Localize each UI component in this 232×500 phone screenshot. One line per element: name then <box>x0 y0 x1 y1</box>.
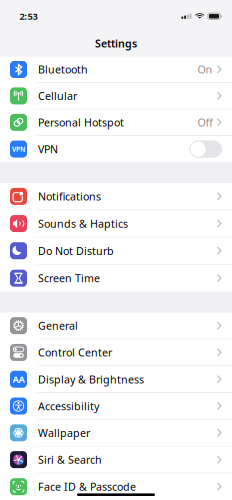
button[interactable]: VPN <box>0 136 232 162</box>
staticText: On <box>197 62 212 77</box>
staticText: Wallpaper <box>38 426 90 440</box>
button[interactable]: Cellular <box>0 83 232 109</box>
button[interactable]: Control Center <box>0 339 232 366</box>
button[interactable]: Accessibility <box>0 393 232 420</box>
staticText: AA <box>12 373 24 385</box>
staticText: Personal Hotspot <box>38 115 124 129</box>
staticText: Siri & Search <box>38 453 102 467</box>
button[interactable]: Do Not Disturb <box>0 237 232 265</box>
button[interactable]: Bluetooth <box>0 56 232 83</box>
staticText: Display & Brightness <box>38 372 144 386</box>
staticText: 2:53 <box>19 10 37 22</box>
button[interactable]: Sounds & Haptics <box>0 210 232 237</box>
button[interactable]: General <box>0 312 232 339</box>
staticText: Bluetooth <box>38 62 88 77</box>
staticText: General <box>38 319 78 333</box>
button[interactable]: Face ID & Passcode <box>0 473 232 500</box>
button[interactable]: Notifications <box>0 183 232 210</box>
staticText: Do Not Disturb <box>38 244 114 258</box>
button[interactable]: Screen Time <box>0 265 232 292</box>
staticText: Off <box>197 115 212 129</box>
button[interactable]: Wallpaper <box>0 420 232 446</box>
staticText: Accessibility <box>38 399 99 413</box>
button[interactable]: Personal Hotspot <box>0 109 232 136</box>
button[interactable]: Siri & Search <box>0 446 232 473</box>
staticText: Face ID & Passcode <box>38 480 136 494</box>
staticText: Settings <box>95 36 137 50</box>
staticText: VPN <box>12 145 25 153</box>
staticText: Cellular <box>38 89 77 103</box>
button[interactable]: AA <box>0 366 232 393</box>
staticText: Notifications <box>38 189 101 203</box>
staticText: Control Center <box>38 345 112 360</box>
staticText: Sounds & Haptics <box>38 216 128 231</box>
staticText: Screen Time <box>38 271 100 285</box>
staticText: VPN <box>38 142 58 156</box>
